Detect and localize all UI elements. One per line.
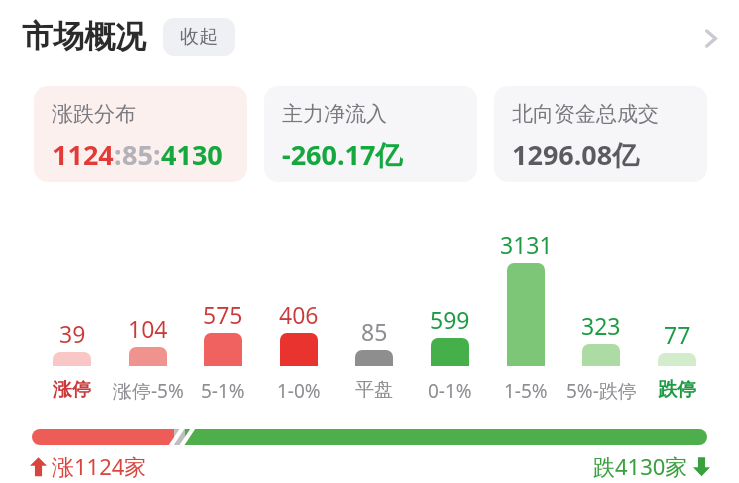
staticText: 0-1% — [428, 378, 472, 404]
staticText: 5-1% — [201, 378, 245, 404]
staticText: 涨1124家 — [52, 451, 147, 481]
staticText: 1124 — [52, 136, 114, 173]
staticText: 575 — [203, 299, 243, 330]
staticText: 主力净流入 — [282, 101, 387, 127]
button[interactable]: 涨跌分布 — [34, 86, 247, 182]
staticText: 39 — [59, 318, 86, 349]
button[interactable]: 跌4130家 — [593, 451, 710, 481]
staticText: 跌4130家 — [593, 451, 688, 481]
staticText: 599 — [430, 304, 470, 335]
staticText: -260.17亿 — [282, 136, 403, 173]
staticText: 市场概况 — [22, 17, 146, 56]
staticText: 5%-跌停 — [566, 378, 637, 404]
staticText: : — [114, 136, 122, 173]
button[interactable]: Expand market overview — [689, 17, 731, 59]
staticText: 1296.08亿 — [512, 136, 640, 173]
staticText: 4130 — [161, 136, 223, 173]
staticText: 77 — [664, 319, 691, 350]
staticText: 85 — [122, 136, 153, 173]
staticText: 406 — [279, 299, 319, 330]
staticText: 跌停 — [658, 378, 696, 402]
staticText: 北向资金总成交 — [512, 101, 659, 127]
staticText: 平盘 — [355, 378, 393, 402]
staticText: 1-5% — [504, 378, 548, 404]
staticText: 涨停-5% — [113, 378, 184, 404]
button[interactable]: 主力净流入 — [264, 86, 477, 182]
button[interactable]: 涨1124家 — [30, 451, 147, 481]
staticText: 涨停 — [53, 378, 91, 402]
staticText: : — [153, 136, 161, 173]
staticText: 1-0% — [277, 378, 321, 404]
button[interactable]: 收起 — [163, 18, 235, 56]
staticText: 收起 — [180, 25, 218, 49]
staticText: 104 — [128, 313, 168, 344]
button[interactable]: 北向资金总成交 — [494, 86, 707, 182]
staticText: 323 — [581, 310, 621, 341]
staticText: 涨跌分布 — [52, 101, 136, 127]
staticText: 3131 — [500, 229, 553, 260]
staticText: 85 — [361, 316, 388, 347]
